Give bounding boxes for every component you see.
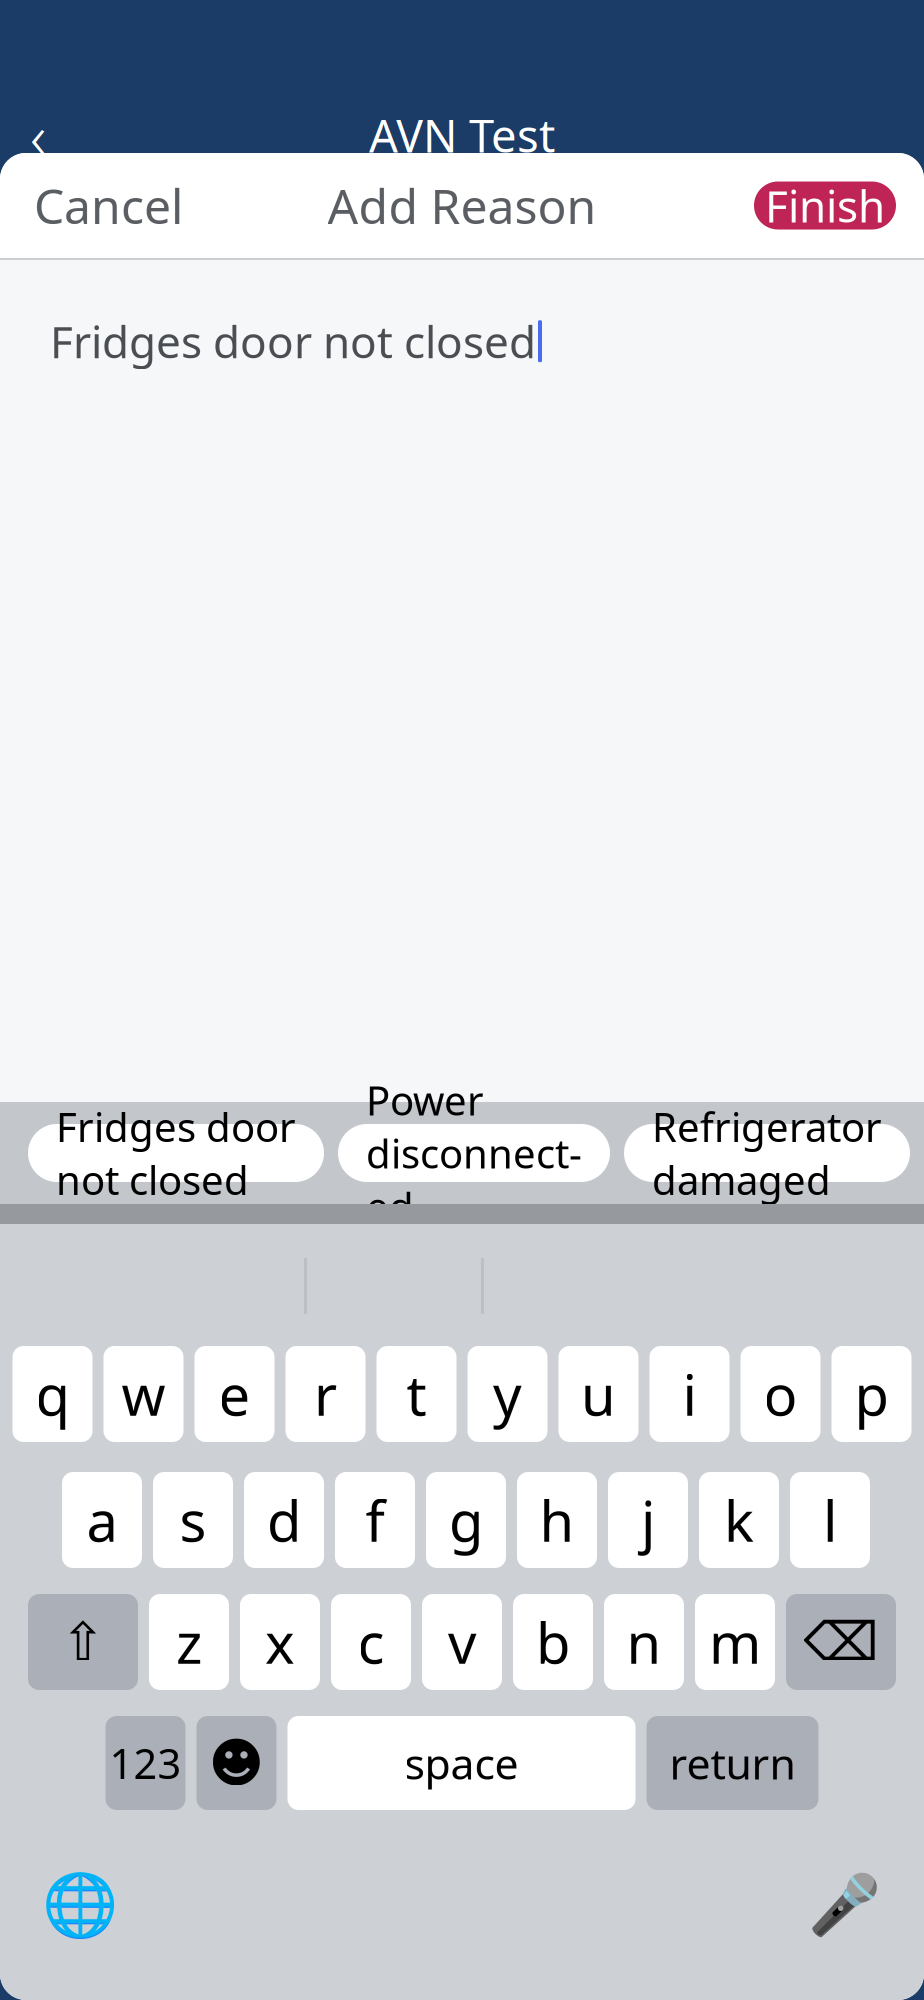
staticText: y — [493, 1357, 522, 1431]
button[interactable]: Finish — [754, 181, 896, 229]
button[interactable]: Shift — [28, 1594, 138, 1690]
staticText: a — [86, 1483, 117, 1557]
staticText: m — [709, 1605, 761, 1679]
staticText: b — [536, 1605, 570, 1679]
button[interactable]: return — [646, 1716, 818, 1810]
button[interactable]: s — [153, 1472, 233, 1568]
staticText: 🌐 — [42, 1870, 118, 1940]
button[interactable]: e — [194, 1346, 274, 1442]
staticText: Fridges door not closed — [56, 1100, 296, 1206]
staticText: u — [581, 1357, 616, 1431]
staticText: ‹ — [30, 94, 46, 176]
staticText: return — [669, 1735, 795, 1791]
button[interactable]: b — [513, 1594, 593, 1690]
staticText: s — [179, 1483, 206, 1557]
staticText: t — [406, 1357, 426, 1431]
button[interactable]: m — [695, 1594, 775, 1690]
staticText: o — [763, 1357, 797, 1431]
staticText: space — [404, 1735, 518, 1791]
staticText: i — [682, 1357, 696, 1431]
button[interactable]: g — [426, 1472, 506, 1568]
staticText: n — [626, 1605, 661, 1679]
staticText: p — [854, 1357, 888, 1431]
staticText: f — [365, 1483, 384, 1557]
button[interactable]: n — [604, 1594, 684, 1690]
staticText: z — [176, 1605, 202, 1679]
staticText: g — [449, 1483, 483, 1557]
staticText: ☻ — [208, 1733, 264, 1793]
button[interactable]: j — [608, 1472, 688, 1568]
button[interactable]: v — [422, 1594, 502, 1690]
button[interactable]: h — [517, 1472, 597, 1568]
button[interactable]: y — [467, 1346, 547, 1442]
staticText: ⇧ — [60, 1612, 105, 1672]
button[interactable]: x — [240, 1594, 320, 1690]
button[interactable]: f — [335, 1472, 415, 1568]
button[interactable]: Emoji — [196, 1716, 276, 1810]
button[interactable]: o — [740, 1346, 820, 1442]
button[interactable]: c — [331, 1594, 411, 1690]
staticText: w — [121, 1357, 165, 1431]
staticText: r — [314, 1357, 337, 1431]
staticText: 🎤 — [807, 1871, 880, 1938]
button[interactable]: q — [12, 1346, 92, 1442]
staticText: Fridges door not closed — [50, 312, 536, 370]
button[interactable]: Cancel — [0, 152, 217, 259]
staticText: e — [218, 1357, 250, 1431]
button[interactable]: z — [149, 1594, 229, 1690]
button[interactable]: Power disconnected — [338, 1124, 610, 1182]
button[interactable]: d — [244, 1472, 324, 1568]
button[interactable]: r — [285, 1346, 365, 1442]
button[interactable]: space — [287, 1716, 635, 1810]
staticText: h — [539, 1483, 574, 1557]
staticText: 123 — [109, 1736, 181, 1790]
staticText: k — [724, 1483, 754, 1557]
staticText: Power disconnected — [366, 1073, 582, 1233]
staticText: x — [265, 1605, 295, 1679]
staticText: c — [357, 1605, 384, 1679]
button[interactable]: k — [699, 1472, 779, 1568]
button[interactable]: p — [831, 1346, 911, 1442]
staticText: Refrigerator damaged — [652, 1100, 882, 1206]
staticText: d — [267, 1483, 301, 1557]
staticText: v — [448, 1605, 476, 1679]
button[interactable]: u — [558, 1346, 638, 1442]
staticText: Finish — [765, 176, 885, 235]
button[interactable]: 123 — [105, 1716, 185, 1810]
staticText: q — [35, 1357, 69, 1431]
staticText: Cancel — [34, 174, 183, 237]
button[interactable]: t — [376, 1346, 456, 1442]
button[interactable]: i — [649, 1346, 729, 1442]
staticText: j — [641, 1483, 655, 1557]
button[interactable]: Fridges door not closed — [28, 1124, 324, 1182]
button[interactable]: Change keyboard — [45, 1870, 115, 1940]
staticText: Add Reason — [327, 174, 596, 237]
staticText: AVN Test — [369, 105, 555, 165]
button[interactable]: Dictation — [809, 1870, 879, 1940]
button[interactable]: Delete — [786, 1594, 896, 1690]
staticText: ⌫ — [803, 1612, 878, 1672]
staticText: l — [823, 1483, 837, 1557]
button[interactable]: a — [62, 1472, 142, 1568]
button[interactable]: Refrigerator damaged — [624, 1124, 910, 1182]
button[interactable]: l — [790, 1472, 870, 1568]
button[interactable]: w — [103, 1346, 183, 1442]
